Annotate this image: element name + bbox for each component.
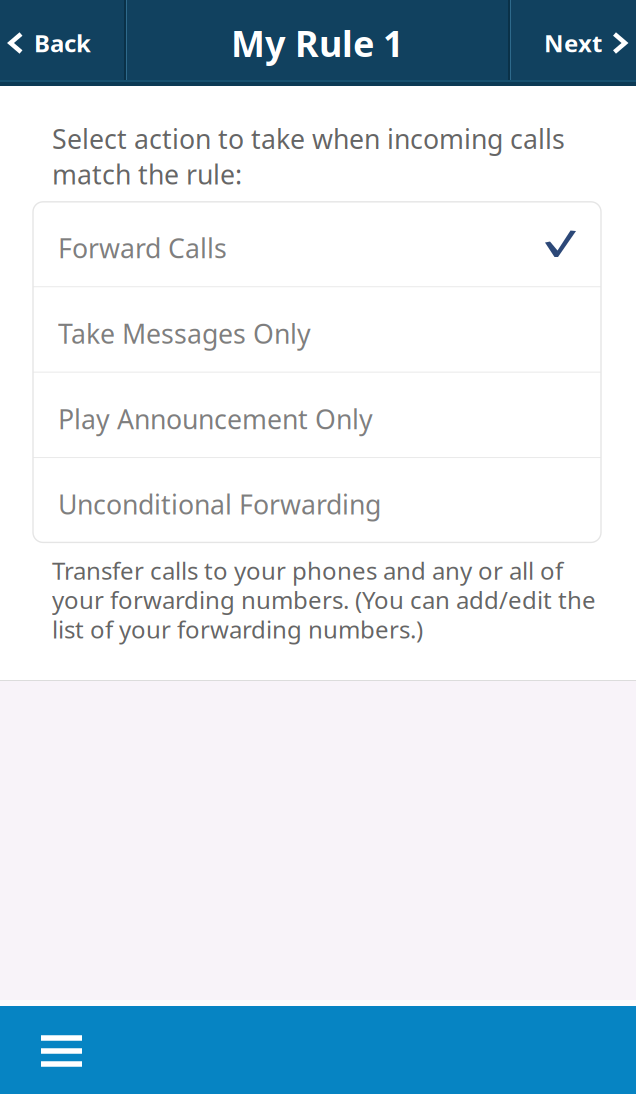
- staticText: Unconditional Forwarding: [58, 486, 381, 522]
- staticText: Play Announcement Only: [58, 401, 373, 436]
- button[interactable]: Take Messages Only: [33, 287, 601, 372]
- staticText: My Rule 1: [231, 19, 404, 67]
- button[interactable]: Next: [511, 0, 636, 80]
- staticText: Back: [34, 27, 91, 59]
- staticText: Take Messages Only: [58, 316, 311, 351]
- button[interactable]: Menu: [0, 1006, 636, 1094]
- button[interactable]: Unconditional Forwarding: [33, 458, 601, 542]
- button[interactable]: Play Announcement Only: [33, 373, 601, 457]
- staticText: Next: [544, 27, 602, 59]
- button[interactable]: Back: [0, 0, 124, 80]
- staticText: Forward Calls: [58, 230, 227, 266]
- staticText: Transfer calls to your phones and any or…: [52, 554, 596, 645]
- button[interactable]: Forward Calls: [33, 202, 601, 286]
- staticText: Select action to take when incoming call…: [52, 121, 565, 192]
